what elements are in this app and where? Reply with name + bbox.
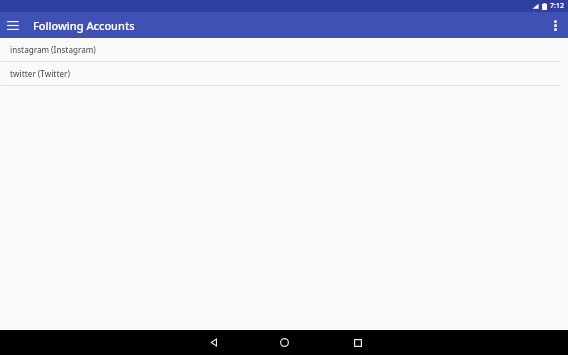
- button[interactable]: More options: [542, 12, 568, 38]
- button[interactable]: twitter (Twitter): [0, 62, 568, 85]
- staticText: twitter (Twitter): [10, 68, 70, 79]
- button[interactable]: Recent apps: [344, 330, 372, 355]
- button[interactable]: Home: [270, 330, 298, 355]
- staticText: Following Accounts: [33, 18, 135, 33]
- staticText: instagram (Instagram): [10, 44, 96, 55]
- button[interactable]: instagram (Instagram): [0, 38, 568, 61]
- staticText: 7:12: [550, 1, 564, 11]
- button[interactable]: Open navigation drawer: [0, 12, 26, 38]
- button[interactable]: Back: [200, 330, 228, 355]
